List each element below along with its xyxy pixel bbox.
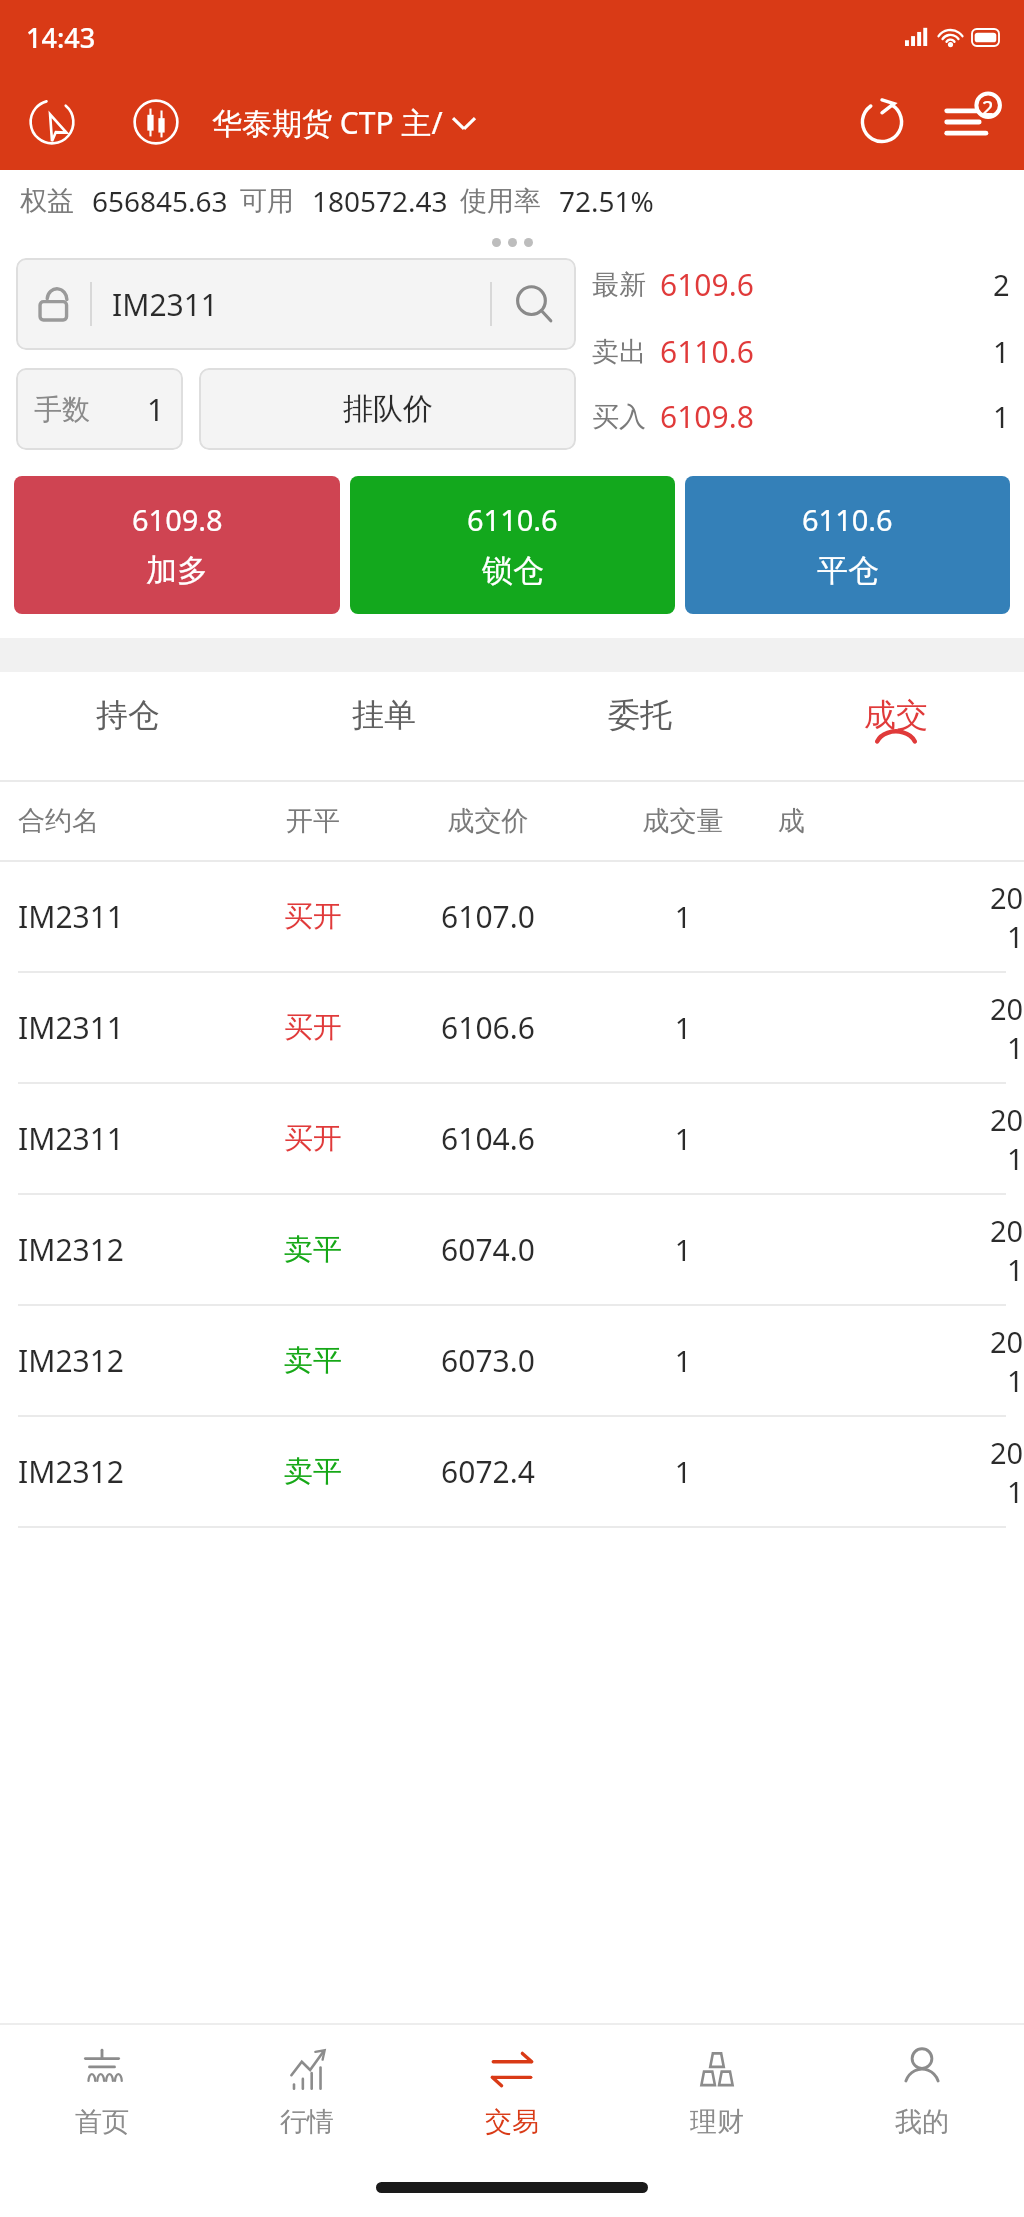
staticText: 1	[1007, 1139, 1024, 1178]
staticText: 合约名	[18, 804, 238, 838]
button[interactable]: 6110.6	[350, 476, 675, 614]
staticText: 交易	[485, 2105, 539, 2139]
staticText: 挂单	[352, 695, 416, 735]
staticText: 2	[982, 94, 994, 121]
button[interactable]: 交易	[409, 2025, 614, 2157]
staticText: 1	[1007, 1028, 1024, 1067]
staticText: 1	[1007, 1250, 1024, 1289]
staticText: 1	[1007, 1472, 1024, 1511]
staticText: 我的	[895, 2105, 949, 2139]
staticText: 1	[588, 1341, 778, 1380]
staticText: 1	[1007, 1361, 1024, 1400]
staticText: IM2311	[112, 284, 490, 325]
staticText: 1	[588, 897, 778, 936]
button[interactable]: IM2312	[0, 1306, 1024, 1415]
button[interactable]: IM2312	[0, 1195, 1024, 1304]
staticText: 排队价	[343, 390, 433, 428]
button[interactable]: 持仓	[0, 672, 256, 780]
staticText: 20	[990, 1100, 1024, 1139]
staticText: 20	[990, 1433, 1024, 1472]
staticText: 180572.43	[312, 182, 448, 220]
staticText: 20	[990, 878, 1024, 917]
staticText: 手数	[34, 392, 90, 427]
staticText: 1	[993, 397, 1010, 436]
staticText: 卖平	[238, 1342, 388, 1379]
staticText: 持仓	[96, 695, 160, 735]
staticText: IM2311	[18, 1118, 238, 1159]
button[interactable]: IM2311	[0, 973, 1024, 1082]
button[interactable]: 行情	[204, 2025, 409, 2157]
button[interactable]: 成交	[768, 672, 1024, 780]
staticText: 20	[990, 989, 1024, 1028]
staticText: 6072.4	[388, 1451, 588, 1492]
staticText: 成交价	[388, 804, 588, 838]
staticText: IM2312	[18, 1340, 238, 1381]
staticText: 权益	[20, 184, 74, 218]
staticText: 开平	[238, 804, 388, 838]
staticText: 20	[990, 1322, 1024, 1361]
button[interactable]: IM2311	[0, 1084, 1024, 1193]
staticText: IM2312	[18, 1229, 238, 1270]
staticText: 1	[147, 389, 165, 430]
staticText: 656845.63	[92, 182, 228, 220]
staticText: 最新	[592, 268, 646, 302]
staticText: 6110.6	[660, 331, 754, 372]
staticText: 6109.8	[660, 396, 754, 437]
staticText: 1	[1007, 917, 1024, 956]
button[interactable]: IM2312	[0, 1417, 1024, 1526]
button[interactable]: Quotes	[124, 90, 188, 154]
staticText: 加多	[146, 551, 208, 590]
staticText: 使用率	[460, 184, 541, 218]
staticText: 1	[588, 1452, 778, 1491]
staticText: 委托	[608, 695, 672, 735]
staticText: 2	[993, 265, 1010, 304]
staticText: 72.51%	[559, 182, 654, 220]
button[interactable]: 挂单	[256, 672, 512, 780]
staticText: 买入	[592, 400, 646, 434]
button[interactable]: Refresh	[846, 86, 918, 158]
staticText: 6110.6	[467, 500, 558, 539]
button[interactable]: 手数	[16, 368, 183, 450]
staticText: 买开	[238, 1120, 388, 1157]
button[interactable]: 华泰期货 CTP 主/	[212, 102, 846, 143]
staticText: 可用	[240, 184, 294, 218]
staticText: 20	[990, 1211, 1024, 1250]
staticText: 6104.6	[388, 1118, 588, 1159]
staticText: 6074.0	[388, 1229, 588, 1270]
other: Search	[492, 258, 576, 350]
staticText: 行情	[280, 2105, 334, 2139]
button[interactable]: Pointer	[20, 90, 84, 154]
staticText: 14:43	[26, 19, 96, 56]
staticText: 6073.0	[388, 1340, 588, 1381]
staticText: 1	[588, 1008, 778, 1047]
staticText: 理财	[690, 2105, 744, 2139]
button[interactable]: IM2311	[16, 258, 576, 350]
staticText: 1	[588, 1119, 778, 1158]
staticText: 华泰期货 CTP 主/	[212, 102, 443, 143]
button[interactable]: 理财	[614, 2025, 819, 2157]
staticText: 卖平	[238, 1453, 388, 1490]
staticText: 6109.6	[660, 264, 754, 305]
staticText: 买开	[238, 898, 388, 935]
button[interactable]: Menu	[932, 86, 1004, 158]
staticText: 6107.0	[388, 896, 588, 937]
button[interactable]: IM2311	[0, 862, 1024, 971]
button[interactable]: 排队价	[199, 368, 576, 450]
staticText: 卖出	[592, 335, 646, 369]
staticText: IM2312	[18, 1451, 238, 1492]
staticText: 成交	[864, 695, 928, 735]
staticText: 买开	[238, 1009, 388, 1046]
button[interactable]: 6110.6	[685, 476, 1010, 614]
button[interactable]: 6109.8	[14, 476, 340, 614]
staticText: 成	[778, 804, 1024, 838]
staticText: 成交量	[588, 804, 778, 838]
staticText: 6106.6	[388, 1007, 588, 1048]
button[interactable]: 委托	[512, 672, 768, 780]
staticText: 锁仓	[482, 551, 544, 590]
staticText: IM2311	[18, 896, 238, 937]
button[interactable]: 我的	[819, 2025, 1024, 2157]
button[interactable]: 首页	[0, 2025, 204, 2157]
staticText: 6110.6	[802, 500, 893, 539]
staticText: 卖平	[238, 1231, 388, 1268]
staticText: IM2311	[18, 1007, 238, 1048]
